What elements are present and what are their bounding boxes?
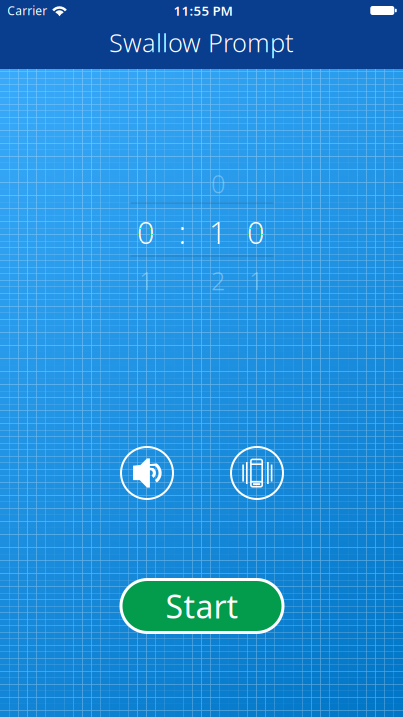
staticText: Swallow Prompt bbox=[109, 26, 294, 59]
staticText: Carrier bbox=[7, 2, 47, 18]
staticText: 1 bbox=[249, 264, 263, 297]
button[interactable]: Sound bbox=[121, 447, 173, 499]
staticText: 0 bbox=[247, 212, 265, 252]
button[interactable]: Start bbox=[121, 579, 283, 632]
button[interactable]: Vibrate bbox=[231, 447, 283, 499]
staticText: 1 bbox=[139, 264, 153, 297]
staticText: Start bbox=[165, 585, 238, 627]
staticText: 0 bbox=[211, 167, 225, 200]
staticText: 2 bbox=[211, 264, 225, 297]
staticText: 11:55 PM bbox=[173, 2, 232, 19]
staticText: : bbox=[178, 212, 185, 252]
staticText: 1 bbox=[209, 212, 227, 252]
staticText: 0 bbox=[137, 212, 155, 252]
